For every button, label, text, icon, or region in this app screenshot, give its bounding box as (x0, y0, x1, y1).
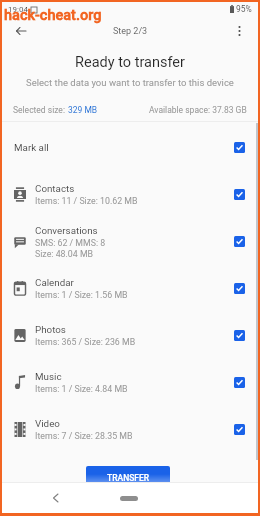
staticText: Items: 1 / Size: 4.84 MB (35, 384, 128, 394)
staticText: 329 MB (68, 105, 98, 115)
button[interactable]: Music (2, 359, 258, 406)
staticText: Items: 365 / Size: 236 MB (35, 337, 136, 347)
staticText: Calendar (35, 277, 74, 288)
button[interactable]: Selected (234, 189, 245, 200)
staticText: SMS: 62 / MMS: 8 (35, 238, 106, 248)
button[interactable]: Calendar (2, 265, 258, 312)
staticText: Video (35, 418, 60, 429)
staticText: Conversations (35, 225, 98, 236)
button[interactable]: More options (227, 19, 251, 43)
staticText: Select the data you want to transfer to … (2, 77, 258, 88)
button[interactable]: Contacts (2, 171, 258, 218)
staticText: Photos (35, 324, 66, 335)
staticText: Music (35, 371, 62, 382)
staticText: Items: 11 / Size: 10.62 MB (35, 196, 138, 206)
button[interactable]: TRANSFER (86, 466, 170, 484)
button[interactable]: Video (2, 406, 258, 453)
button[interactable]: Selected (234, 330, 245, 341)
staticText: Contacts (35, 183, 75, 194)
button[interactable]: Conversations (2, 218, 258, 265)
button[interactable]: Selected (234, 424, 245, 435)
staticText: Step 2/3 (113, 26, 148, 37)
button[interactable]: Back (9, 19, 33, 43)
staticText: Items: 7 / Size: 28.35 MB (35, 431, 133, 441)
button[interactable]: Selected (234, 283, 245, 294)
staticText: Size: 48.04 MB (35, 249, 94, 259)
button[interactable]: Mark all (2, 123, 258, 171)
button[interactable]: Selected (234, 377, 245, 388)
staticText: Items: 1 / Size: 1.56 MB (35, 290, 128, 300)
button[interactable]: Selected (234, 142, 245, 153)
staticText: Ready to transfer (2, 54, 258, 71)
button[interactable]: Back (45, 488, 65, 508)
button[interactable]: Home (120, 496, 138, 501)
staticText: Mark all (14, 142, 49, 153)
staticText: TRANSFER (107, 473, 150, 483)
staticText: 95% (236, 4, 252, 14)
button[interactable]: Photos (2, 312, 258, 359)
staticText: 19:04 (8, 5, 28, 14)
button[interactable]: Selected (234, 236, 245, 247)
staticText: hack-cheat.org (4, 7, 102, 24)
staticText: Available space: 37.83 GB (149, 105, 247, 115)
staticText: Selected size: (13, 105, 68, 115)
